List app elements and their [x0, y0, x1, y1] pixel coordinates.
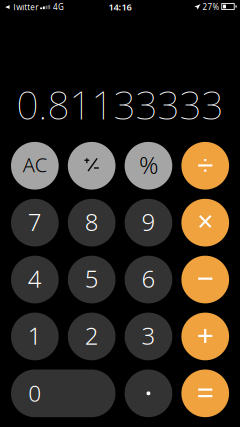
staticText: %	[139, 149, 158, 181]
button[interactable]: 9	[125, 199, 172, 246]
staticText: AC	[23, 151, 47, 178]
staticText: 4G	[53, 2, 64, 12]
button[interactable]: Decimal point	[125, 369, 172, 417]
button[interactable]: 6	[125, 256, 172, 303]
button[interactable]: 4	[11, 256, 59, 303]
staticText: 4	[28, 263, 42, 294]
staticText: 0	[28, 378, 41, 408]
button[interactable]: AC	[11, 142, 59, 190]
button[interactable]: Minus	[181, 256, 229, 303]
button[interactable]: 7	[11, 199, 59, 246]
staticText: 27%	[203, 2, 220, 12]
staticText: 14:16	[108, 1, 131, 13]
staticText: 9	[141, 206, 155, 238]
staticText: 7	[28, 206, 42, 238]
button[interactable]: Zero	[11, 369, 115, 417]
staticText: 1	[28, 319, 42, 351]
button[interactable]: Multiply	[181, 199, 229, 246]
button[interactable]: %	[125, 142, 172, 190]
staticText: Twitter	[12, 2, 38, 12]
button[interactable]: 1	[11, 313, 59, 360]
staticText: 0.81133333	[16, 79, 223, 130]
button[interactable]: 8	[68, 199, 115, 246]
staticText: 8	[85, 206, 99, 238]
staticText: 3	[141, 319, 155, 351]
button[interactable]: Back to Twitter	[5, 1, 38, 13]
button[interactable]: Equals	[181, 369, 229, 417]
button[interactable]: 5	[68, 256, 115, 303]
button[interactable]: 3	[125, 313, 172, 360]
staticText: 2	[85, 319, 99, 351]
staticText: 5	[85, 263, 99, 294]
button[interactable]: Plus	[181, 313, 229, 360]
button[interactable]: Divide	[181, 142, 229, 190]
button[interactable]: Plus minus	[68, 142, 115, 190]
staticText: 6	[141, 263, 155, 294]
button[interactable]: 2	[68, 313, 115, 360]
